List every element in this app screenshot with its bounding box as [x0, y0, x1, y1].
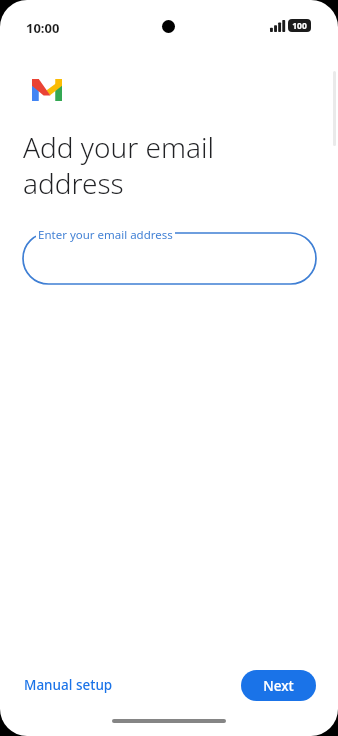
staticText: Next — [263, 677, 294, 695]
staticText: Enter your email address — [38, 227, 173, 243]
button[interactable]: Next — [241, 670, 316, 701]
staticText: Add your email address — [23, 128, 214, 202]
button[interactable]: Enter your email address — [23, 233, 316, 284]
staticText: 10:00 — [26, 19, 60, 37]
staticText: 100 — [292, 20, 307, 32]
staticText: Manual setup — [24, 676, 113, 694]
button[interactable]: Manual setup — [0, 667, 127, 703]
